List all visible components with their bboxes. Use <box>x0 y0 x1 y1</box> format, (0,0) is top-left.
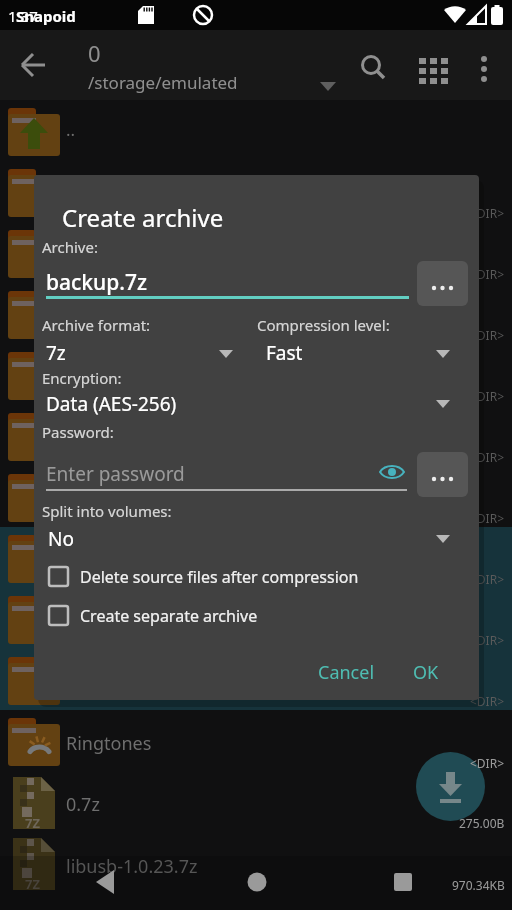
button[interactable] <box>0 588 512 649</box>
staticText: Fast <box>266 340 303 366</box>
button[interactable] <box>46 521 450 553</box>
staticText: <DIR> <box>470 571 505 587</box>
staticText: 0.7z <box>66 792 100 817</box>
staticText: Cancel <box>318 660 375 685</box>
button[interactable]: Cancel <box>304 650 384 690</box>
staticText: 7z <box>46 340 66 366</box>
staticText: <DIR> <box>470 205 505 221</box>
staticText: <DIR> <box>470 449 505 465</box>
button[interactable] <box>380 463 404 481</box>
staticText: Archive format: <box>42 315 151 335</box>
staticText: backup.7z <box>46 268 148 297</box>
staticText: <DIR> <box>470 510 505 526</box>
staticText: Create separate archive <box>80 605 258 627</box>
button[interactable] <box>0 832 512 893</box>
button[interactable] <box>12 50 56 94</box>
button[interactable] <box>0 771 512 832</box>
staticText: <DIR> <box>470 693 505 709</box>
button[interactable] <box>46 561 416 592</box>
button[interactable] <box>417 452 468 497</box>
button[interactable] <box>46 600 306 631</box>
staticText: 275.00B <box>459 815 505 831</box>
staticText: Ringtones <box>66 731 152 756</box>
button[interactable] <box>70 30 340 100</box>
button[interactable] <box>0 649 512 710</box>
staticText: libusb-1.0.23.7z <box>66 854 198 879</box>
button[interactable] <box>88 868 124 898</box>
button[interactable] <box>49 606 68 625</box>
staticText: 7Z <box>25 875 40 893</box>
staticText: <DIR> <box>470 388 505 404</box>
staticText: Split into volumes: <box>42 501 172 521</box>
button[interactable] <box>417 261 468 306</box>
staticText: Snapoid <box>16 6 76 26</box>
button[interactable] <box>46 455 376 491</box>
button[interactable] <box>0 710 512 771</box>
staticText: 0 <box>88 38 101 68</box>
button[interactable] <box>0 527 512 588</box>
staticText: <DIR> <box>470 327 505 343</box>
staticText: Archive: <box>42 237 98 257</box>
staticText: .. <box>66 118 76 141</box>
staticText: OK <box>413 660 439 685</box>
staticText: Encryption: <box>42 368 122 388</box>
staticText: /storage/emulated <box>88 71 238 94</box>
button[interactable] <box>354 48 394 88</box>
staticText: No <box>48 526 74 552</box>
button[interactable] <box>386 868 420 898</box>
button[interactable] <box>466 52 502 88</box>
button[interactable] <box>416 752 485 821</box>
staticText: <DIR> <box>470 266 505 282</box>
staticText: 7Z <box>25 814 40 832</box>
button[interactable] <box>414 52 454 92</box>
staticText: Delete source files after compression <box>80 566 359 588</box>
staticText: Compression level: <box>257 315 390 335</box>
staticText: <DIR> <box>470 632 505 648</box>
staticText: Data (AES-256) <box>46 391 177 417</box>
staticText: 1:37 <box>8 6 38 26</box>
button[interactable] <box>46 335 232 367</box>
button[interactable] <box>240 868 274 898</box>
button[interactable] <box>49 567 68 586</box>
staticText: <DIR> <box>470 755 505 771</box>
staticText: 970.34KB <box>452 877 505 893</box>
button[interactable] <box>46 263 409 299</box>
button[interactable] <box>264 335 450 367</box>
button[interactable]: OK <box>399 650 459 690</box>
staticText: Create archive <box>62 201 224 234</box>
button[interactable] <box>46 386 450 418</box>
staticText: Password: <box>42 422 114 442</box>
staticText: Enter password <box>46 461 185 487</box>
